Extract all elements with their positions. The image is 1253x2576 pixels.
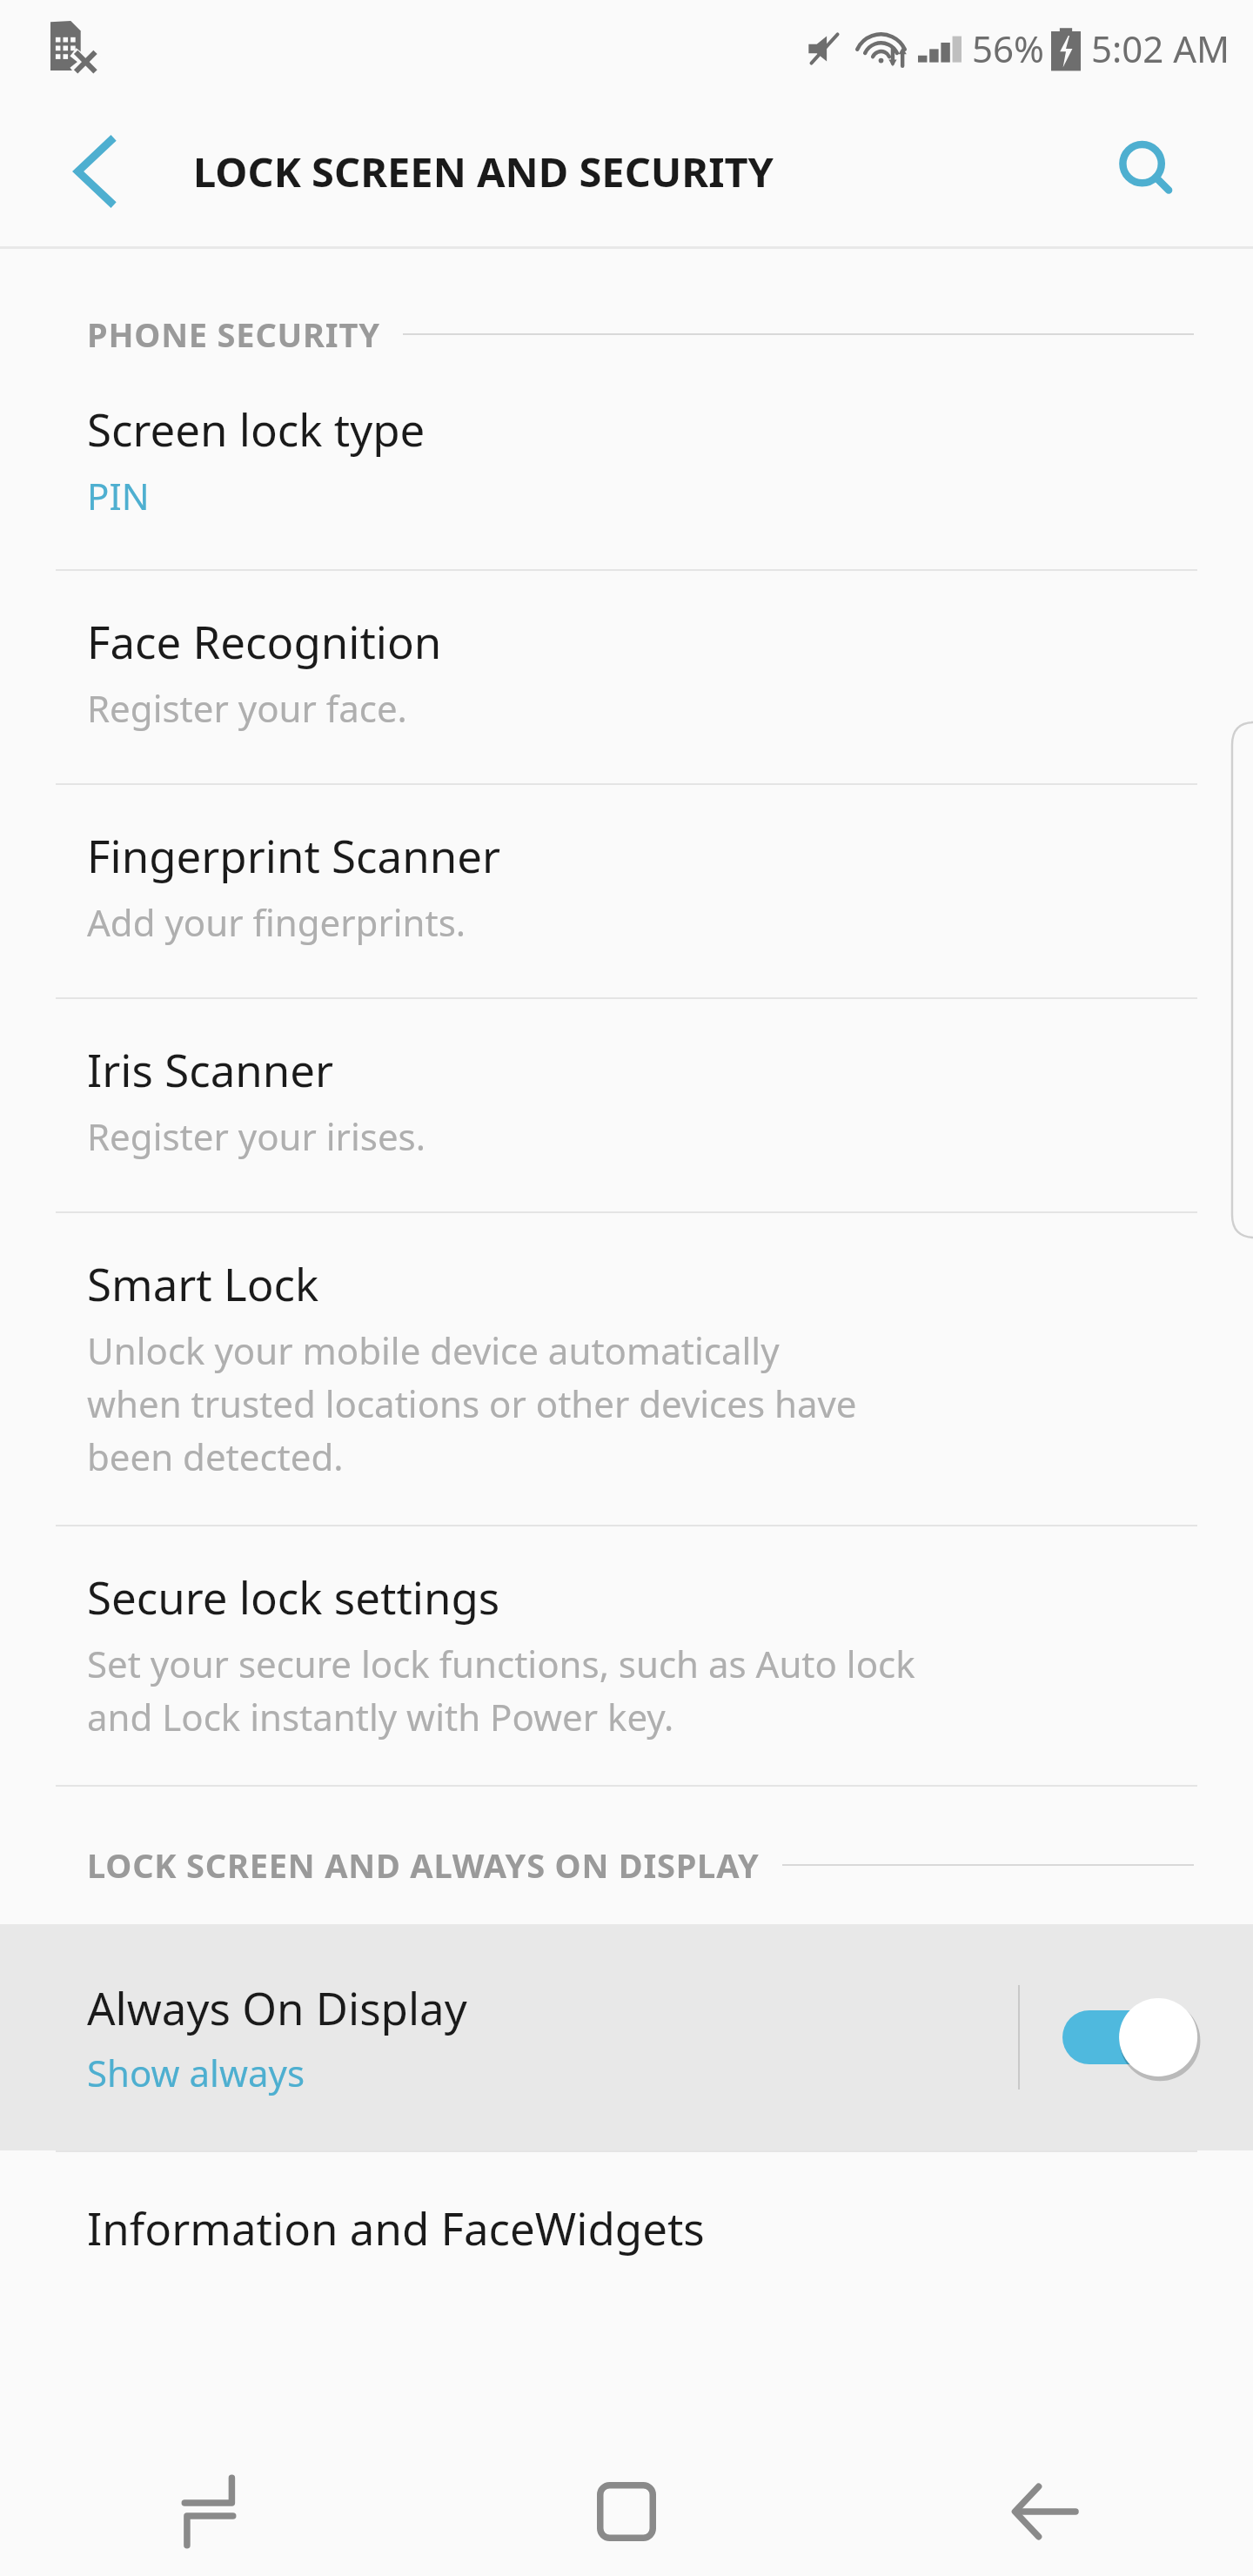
staticText: Information and FaceWidgets <box>87 2197 705 2257</box>
button[interactable]: Secure lock settings <box>0 1526 1253 1785</box>
button[interactable]: Always On Display toggle <box>1020 1924 1253 2150</box>
staticText: Screen lock type <box>87 399 425 459</box>
button[interactable]: Search <box>1095 117 1203 225</box>
staticText: Set your secure lock functions, such as … <box>87 1639 915 1741</box>
staticText: Always On Display <box>87 1977 467 2037</box>
staticText: 56% <box>972 23 1044 73</box>
staticText: Face Recognition <box>87 611 442 671</box>
button[interactable]: Back <box>835 2447 1253 2576</box>
button[interactable]: Recents <box>0 2447 418 2576</box>
staticText: Iris Scanner <box>87 1039 334 1099</box>
button[interactable]: Smart Lock <box>0 1213 1253 1525</box>
button[interactable]: Face Recognition <box>0 571 1253 783</box>
staticText: Add your fingerprints. <box>87 897 466 947</box>
staticText: Unlock your mobile device automatically … <box>87 1325 857 1481</box>
staticText: LOCK SCREEN AND SECURITY <box>193 144 774 199</box>
staticText: Smart Lock <box>87 1253 319 1313</box>
staticText: 5:02 AM <box>1091 23 1230 73</box>
staticText: PHONE SECURITY <box>87 312 380 357</box>
button[interactable]: Information and FaceWidgets <box>0 2152 1253 2292</box>
staticText: Fingerprint Scanner <box>87 825 501 885</box>
staticText: Show always <box>87 2048 305 2097</box>
button[interactable]: Back <box>40 117 148 225</box>
button[interactable]: Home <box>418 2447 835 2576</box>
button[interactable]: Always On Display <box>0 1924 1253 2150</box>
staticText: Register your face. <box>87 683 407 733</box>
button[interactable]: Fingerprint Scanner <box>0 785 1253 997</box>
button[interactable]: Iris Scanner <box>0 999 1253 1211</box>
staticText: Secure lock settings <box>87 1566 500 1627</box>
button[interactable]: Screen lock type <box>0 357 1253 569</box>
staticText: Register your irises. <box>87 1111 425 1161</box>
staticText: LOCK SCREEN AND ALWAYS ON DISPLAY <box>87 1842 760 1888</box>
staticText: PIN <box>87 471 150 520</box>
